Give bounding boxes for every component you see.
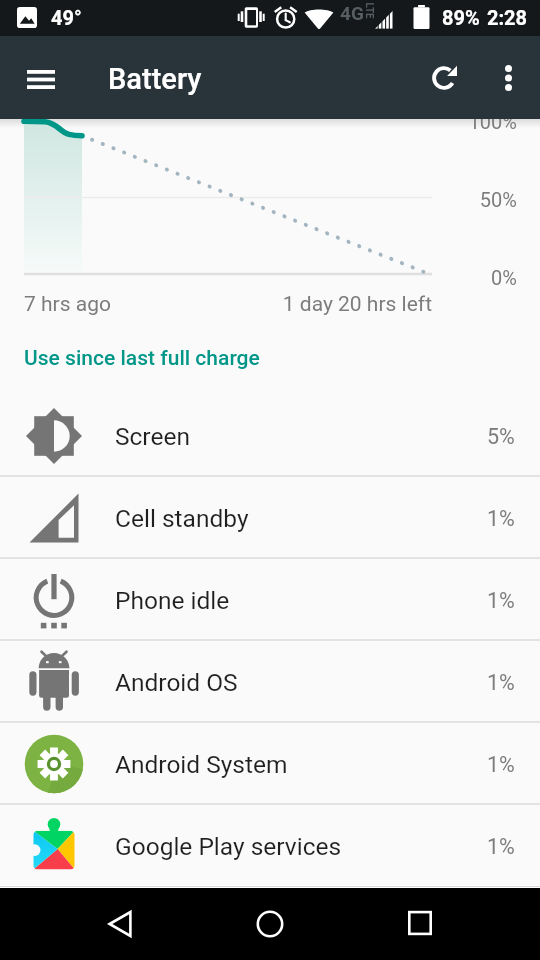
staticText: 49°: [51, 6, 82, 29]
staticText: Google Play services: [115, 832, 342, 861]
button[interactable]: Open navigation drawer: [15, 52, 67, 104]
staticText: 1%: [487, 670, 515, 695]
staticText: 1%: [487, 588, 515, 613]
staticText: 7 hrs ago: [24, 292, 111, 317]
staticText: 1 day 20 hrs left: [180, 292, 432, 317]
staticText: 100%: [300, 110, 517, 133]
staticText: Android System: [115, 750, 288, 779]
staticText: 89%: [442, 6, 480, 29]
staticText: 4G: [340, 2, 364, 24]
button[interactable]: More options: [482, 52, 534, 104]
button[interactable]: Screen: [0, 395, 540, 477]
button[interactable]: Home: [236, 896, 304, 952]
button[interactable]: Recent apps: [386, 896, 454, 952]
staticText: Android OS: [115, 668, 238, 697]
staticText: Use since last full charge: [24, 346, 260, 371]
staticText: 0%: [300, 266, 517, 289]
staticText: LTE: [362, 2, 374, 19]
staticText: 1%: [487, 506, 515, 531]
staticText: 1%: [487, 752, 515, 777]
staticText: 5%: [487, 424, 515, 449]
button[interactable]: Cell standby: [0, 477, 540, 559]
staticText: 50%: [300, 188, 517, 211]
button[interactable]: Phone idle: [0, 559, 540, 641]
button[interactable]: Refresh: [418, 52, 470, 104]
button[interactable]: Google Play services: [0, 805, 540, 887]
staticText: 2:28: [487, 6, 528, 29]
button[interactable]: Android OS: [0, 641, 540, 723]
staticText: 1%: [487, 834, 515, 859]
staticText: Cell standby: [115, 504, 249, 533]
staticText: Battery: [108, 62, 202, 96]
button[interactable]: Android System: [0, 723, 540, 805]
staticText: Phone idle: [115, 586, 230, 615]
button[interactable]: Back: [86, 896, 154, 952]
staticText: Screen: [115, 422, 190, 451]
